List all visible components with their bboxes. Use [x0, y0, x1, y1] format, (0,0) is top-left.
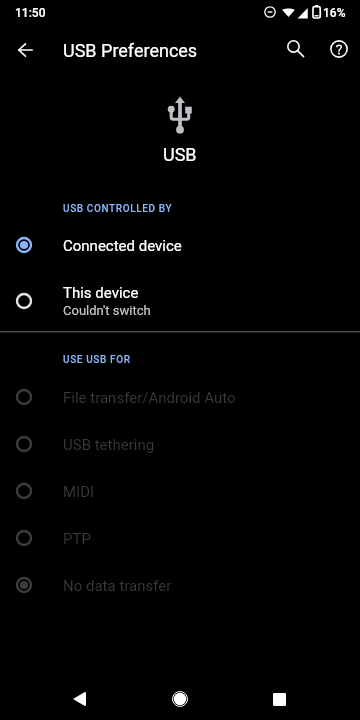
staticText: Connected device — [63, 237, 182, 255]
button[interactable]: File transfer/Android Auto — [0, 373, 360, 420]
staticText: USB Preferences — [63, 40, 198, 61]
button[interactable]: PTP — [0, 514, 360, 561]
button[interactable]: This device — [0, 273, 360, 328]
button[interactable]: Connected device — [0, 221, 360, 268]
staticText: MIDI — [63, 483, 95, 501]
staticText: No data transfer — [63, 577, 172, 595]
button[interactable]: MIDI — [0, 467, 360, 514]
button[interactable]: Recent apps — [255, 675, 303, 720]
staticText: File transfer/Android Auto — [63, 389, 236, 407]
button[interactable]: Home — [156, 675, 204, 720]
button[interactable]: Back — [55, 675, 103, 720]
button[interactable]: No data transfer — [0, 561, 360, 608]
staticText: 11:50 — [15, 6, 46, 20]
staticText: 16% — [323, 6, 346, 20]
staticText: USB CONTROLLED BY — [63, 203, 173, 215]
staticText: USE USB FOR — [63, 354, 131, 366]
staticText: This device — [63, 284, 139, 302]
button[interactable]: Help — [315, 25, 360, 73]
button[interactable]: Navigate up — [1, 25, 49, 73]
button[interactable]: USB tethering — [0, 420, 360, 467]
staticText: USB — [163, 144, 197, 165]
button[interactable]: Search — [272, 25, 320, 73]
staticText: PTP — [63, 530, 91, 548]
staticText: USB tethering — [63, 436, 155, 454]
staticText: Couldn't switch — [63, 303, 151, 318]
